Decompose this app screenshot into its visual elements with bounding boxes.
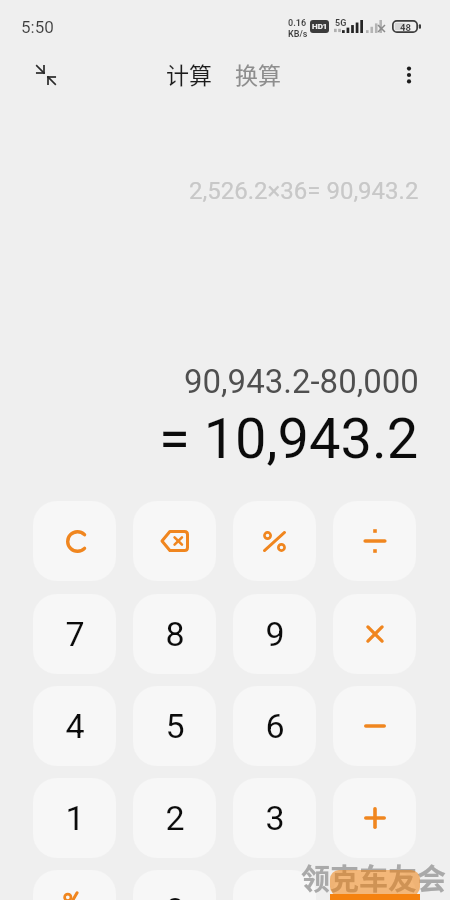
button[interactable]: Percent <box>233 501 316 581</box>
other: Subtract <box>362 713 388 739</box>
staticText: 2 <box>165 798 185 838</box>
other: Multiply <box>365 624 385 644</box>
staticText: 领克车友会 <box>301 856 447 898</box>
other: Per mille <box>62 891 88 900</box>
staticText: 换算 <box>235 57 281 90</box>
button[interactable]: 0 <box>133 870 216 900</box>
other: Clear <box>66 530 89 553</box>
staticText: 5 <box>165 706 185 746</box>
staticText: 1 <box>65 798 85 838</box>
button[interactable]: 8 <box>133 594 216 674</box>
button[interactable]: Add <box>333 778 416 858</box>
staticText: 5G <box>335 18 347 29</box>
button[interactable]: Subtract <box>333 686 416 766</box>
button[interactable]: 换算 <box>235 57 281 90</box>
staticText: 4 <box>65 706 85 746</box>
button[interactable]: Divide <box>333 501 416 581</box>
button[interactable]: . <box>233 870 316 900</box>
button[interactable]: 5 <box>133 686 216 766</box>
button[interactable]: Per mille <box>33 870 116 900</box>
other: Percent <box>263 531 286 552</box>
staticText: 6 <box>265 706 285 746</box>
button[interactable]: 2 <box>133 778 216 858</box>
staticText: 90,943.2-80,000 <box>184 362 419 401</box>
staticText: = 10,943.2 <box>159 406 419 472</box>
staticText: 0 <box>165 890 185 900</box>
button[interactable]: 1 <box>33 778 116 858</box>
button[interactable]: 计算 <box>166 57 212 90</box>
staticText: 3 <box>265 798 285 838</box>
other: Divide <box>362 528 388 554</box>
button[interactable]: 4 <box>33 686 116 766</box>
other: Add <box>362 805 388 831</box>
button[interactable]: Clear <box>33 501 116 581</box>
button[interactable]: Delete <box>133 501 216 581</box>
staticText: 5:50 <box>21 17 54 37</box>
staticText: HD1 <box>312 22 328 31</box>
staticText: 8 <box>165 614 185 654</box>
button[interactable]: 9 <box>233 594 316 674</box>
button[interactable]: 6 <box>233 686 316 766</box>
button[interactable]: 3 <box>233 778 316 858</box>
button[interactable]: 7 <box>33 594 116 674</box>
button[interactable]: Multiply <box>333 594 416 674</box>
button[interactable]: More options <box>387 53 431 97</box>
staticText: 2,526.2×36= 90,943.2 <box>189 177 419 205</box>
staticText: 9 <box>265 614 285 654</box>
other: Delete <box>160 530 189 552</box>
staticText: 7 <box>65 614 85 654</box>
staticText: 0.16 <box>288 18 307 29</box>
staticText: 48 <box>400 22 411 33</box>
staticText: 计算 <box>166 57 212 90</box>
staticText: KB/s <box>288 29 308 40</box>
button[interactable]: Equals <box>333 870 416 900</box>
button[interactable]: Collapse <box>24 53 68 97</box>
